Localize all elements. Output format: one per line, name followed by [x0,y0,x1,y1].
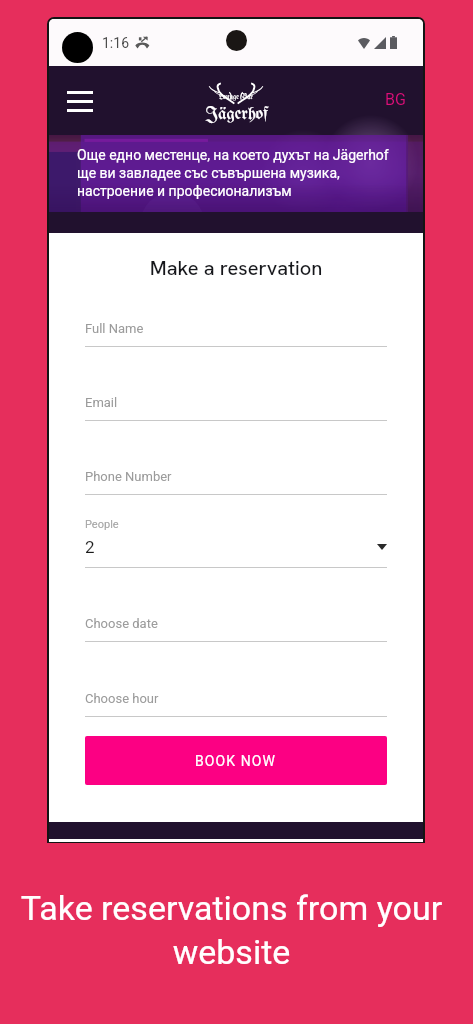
staticText: Take reservations from your website [13,888,450,972]
button[interactable]: Email [85,395,387,421]
staticText: Phone Number [85,469,172,484]
button[interactable]: Choose hour [85,691,387,717]
staticText: Email [85,395,118,410]
button[interactable]: Phone Number [85,469,387,495]
button[interactable]: Full Name [85,321,387,347]
staticText: Make a reservation [85,255,387,281]
staticText: 1:16 [102,35,129,51]
staticText: Lounge Bar [219,94,253,101]
button[interactable]: BOOK NOW [85,736,387,785]
staticText: Choose hour [85,691,159,706]
button[interactable]: Menu [62,86,98,116]
staticText: Choose date [85,616,158,631]
staticText: 2 [85,537,95,557]
staticText: BOOK NOW [195,753,277,769]
button[interactable]: BG [381,86,410,113]
button[interactable]: Choose date [85,616,387,642]
staticText: People [85,518,119,531]
staticText: Jägerhof [205,105,268,124]
staticText: BG [385,90,406,109]
staticText: Full Name [85,321,144,336]
staticText: Още едно местенце, на което духът на Jäg… [77,147,389,200]
button[interactable]: People [85,518,387,568]
